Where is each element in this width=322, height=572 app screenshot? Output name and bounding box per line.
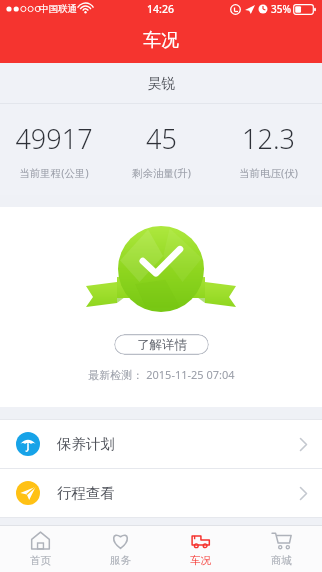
staticText: 当前电压(伏) — [239, 166, 298, 180]
staticText: 车况 — [143, 29, 179, 52]
staticText: 行程查看 — [57, 484, 115, 502]
staticText: 保养计划 — [57, 435, 115, 453]
staticText: 12.3 — [242, 120, 295, 157]
button[interactable]: 服务 — [80, 525, 160, 572]
staticText: 最新检测： 2015-11-25 07:04 — [88, 367, 235, 382]
staticText: 剩余油量(升) — [132, 166, 191, 180]
button[interactable]: 首页 — [0, 525, 80, 572]
staticText: 服务 — [110, 554, 131, 567]
staticText: 昊锐 — [148, 75, 175, 92]
staticText: 14:26 — [147, 2, 174, 16]
button[interactable]: 车况 — [160, 525, 241, 572]
button[interactable]: 保养计划 — [0, 420, 322, 468]
staticText: 车况 — [190, 554, 211, 567]
staticText: 49917 — [15, 120, 93, 157]
button[interactable]: 商城 — [241, 525, 322, 572]
staticText: 35% — [271, 2, 291, 16]
button[interactable]: 行程查看 — [0, 469, 322, 517]
staticText: 首页 — [30, 554, 51, 567]
staticText: 45 — [146, 120, 177, 157]
staticText: 当前里程(公里) — [19, 166, 89, 180]
staticText: 了解详情 — [137, 337, 187, 353]
staticText: 商城 — [271, 554, 292, 567]
staticText: 中国联通 — [39, 3, 77, 15]
button[interactable]: 了解详情 — [114, 334, 209, 355]
